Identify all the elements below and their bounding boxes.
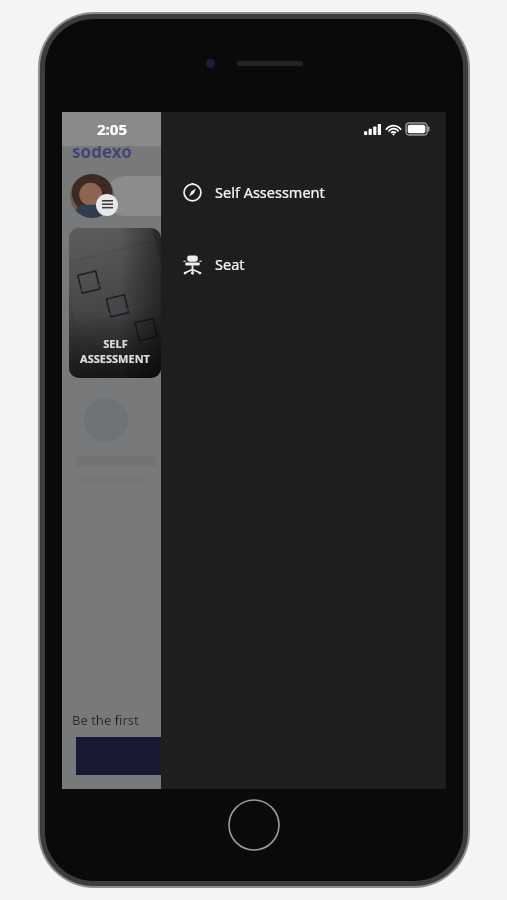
button[interactable]: Seat	[161, 242, 446, 286]
staticText: Seat	[215, 254, 245, 274]
button[interactable]: Open menu	[96, 194, 118, 216]
button[interactable]: Self Assessment	[161, 170, 446, 214]
button[interactable]: sodexo	[62, 112, 161, 789]
staticText: 2:05	[97, 119, 127, 139]
staticText: sodexo	[72, 140, 132, 163]
staticText: Self Assessment	[215, 182, 325, 202]
staticText: Be the first	[72, 711, 139, 729]
button[interactable]: SELF	[69, 228, 161, 378]
staticText: SELF	[103, 336, 128, 351]
staticText: ASSESSMENT	[80, 351, 150, 366]
